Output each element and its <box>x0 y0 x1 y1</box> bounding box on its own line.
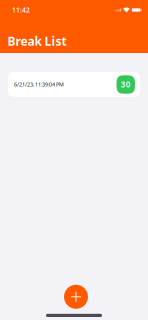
button[interactable]: Add break <box>64 285 88 309</box>
staticText: 6/21/23, 11:39:04 PM <box>14 81 64 88</box>
button[interactable]: 6/21/23, 11:39:04 PM <box>8 72 140 97</box>
staticText: 11:42 <box>12 6 30 14</box>
staticText: Break List <box>7 33 66 49</box>
staticText: 30 <box>121 79 131 90</box>
